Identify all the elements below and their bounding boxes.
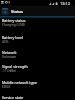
button[interactable]: Mobile network type <box>0 80 75 95</box>
staticText: Unknown <box>2 55 17 59</box>
staticText: Mobile network type <box>2 80 37 85</box>
button[interactable]: Signal strength <box>0 64 75 80</box>
staticText: -113 dBm <box>2 69 17 73</box>
staticText: 13:12 <box>60 1 70 6</box>
other: Notifications <box>1 1 10 4</box>
button[interactable]: Network <box>0 50 75 64</box>
staticText: 44% <box>2 40 9 44</box>
button[interactable]: Up <box>1 8 24 15</box>
button[interactable]: Battery level <box>0 35 75 50</box>
button[interactable]: Service state <box>0 95 75 100</box>
staticText: Status <box>11 9 24 14</box>
staticText: Battery status <box>2 18 26 23</box>
staticText: Signal strength <box>2 64 28 69</box>
staticText: Charging (USB) <box>2 23 25 27</box>
staticText: EDGE <box>2 85 11 89</box>
staticText: Service state <box>2 95 24 100</box>
staticText: Battery level <box>2 35 23 40</box>
button[interactable]: Battery status <box>0 18 75 35</box>
staticText: Network <box>2 50 17 55</box>
